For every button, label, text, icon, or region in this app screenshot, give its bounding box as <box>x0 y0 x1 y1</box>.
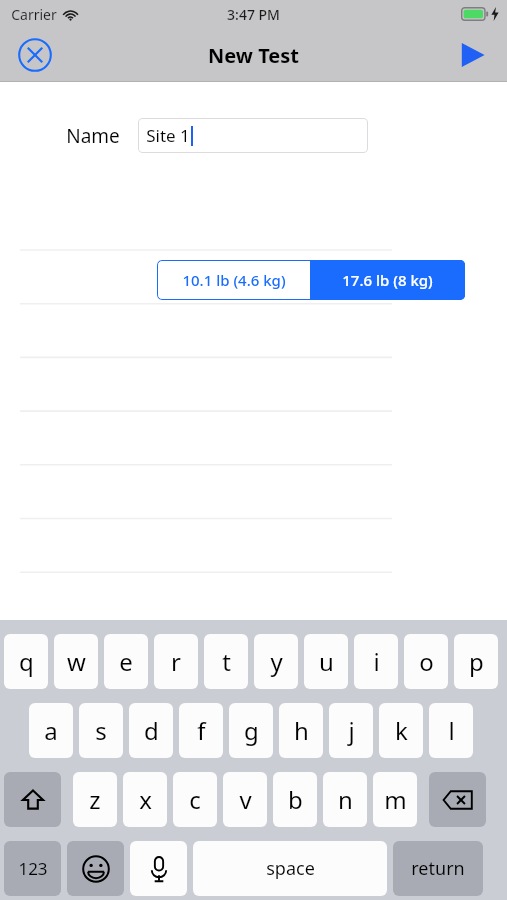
button[interactable]: b <box>273 772 317 827</box>
button[interactable]: Shift <box>4 772 61 827</box>
button[interactable]: 123 <box>4 841 61 896</box>
staticText: n <box>338 783 353 816</box>
button[interactable]: Site 1 <box>138 118 368 153</box>
button[interactable]: c <box>173 772 217 827</box>
button[interactable]: 10.1 lb (4.6 kg) <box>157 260 310 300</box>
button[interactable]: Start test <box>451 34 493 76</box>
button[interactable]: Emoji <box>67 841 124 896</box>
button[interactable]: i <box>354 634 398 689</box>
staticText: l <box>448 714 455 747</box>
button[interactable]: n <box>323 772 367 827</box>
staticText: p <box>469 645 484 678</box>
staticText: y <box>270 645 283 678</box>
button[interactable]: 17.6 lb (8 kg) <box>310 260 465 300</box>
staticText: 10.1 lb (4.6 kg) <box>182 270 286 290</box>
staticText: Name <box>66 123 120 149</box>
staticText: m <box>384 783 407 816</box>
staticText: f <box>197 714 206 747</box>
staticText: Carrier <box>11 5 57 24</box>
button[interactable]: x <box>123 772 167 827</box>
button[interactable]: s <box>79 703 123 758</box>
staticText: r <box>171 645 181 678</box>
staticText: 17.6 lb (8 kg) <box>342 270 433 290</box>
button[interactable]: l <box>429 703 473 758</box>
staticText: h <box>294 714 309 747</box>
staticText: w <box>67 645 86 678</box>
button[interactable]: j <box>329 703 373 758</box>
button[interactable]: r <box>154 634 198 689</box>
button[interactable]: v <box>223 772 267 827</box>
button[interactable]: t <box>204 634 248 689</box>
button[interactable]: a <box>29 703 73 758</box>
button[interactable]: z <box>73 772 117 827</box>
button[interactable]: e <box>104 634 148 689</box>
button[interactable]: g <box>229 703 273 758</box>
button[interactable]: u <box>304 634 348 689</box>
staticText: 123 <box>18 857 48 880</box>
staticText: j <box>348 714 355 747</box>
staticText: t <box>222 645 231 678</box>
staticText: g <box>244 714 259 747</box>
staticText: x <box>139 783 152 816</box>
button[interactable]: y <box>254 634 298 689</box>
staticText: New Test <box>208 42 299 69</box>
staticText: c <box>189 783 201 816</box>
staticText: o <box>419 645 434 678</box>
button[interactable]: m <box>373 772 417 827</box>
staticText: i <box>373 645 380 678</box>
button[interactable]: q <box>4 634 48 689</box>
staticText: z <box>89 783 101 816</box>
button[interactable]: w <box>54 634 98 689</box>
button[interactable]: Backspace <box>429 772 486 827</box>
button[interactable]: p <box>454 634 498 689</box>
staticText: e <box>119 645 133 678</box>
staticText: v <box>239 783 252 816</box>
button[interactable]: f <box>179 703 223 758</box>
button[interactable]: Dictation <box>130 841 187 896</box>
staticText: k <box>395 714 408 747</box>
button[interactable]: space <box>193 841 387 896</box>
button[interactable]: o <box>404 634 448 689</box>
staticText: Site 1 <box>146 124 190 147</box>
button[interactable]: h <box>279 703 323 758</box>
button[interactable]: d <box>129 703 173 758</box>
staticText: 3:47 PM <box>227 5 280 24</box>
staticText: space <box>266 856 315 881</box>
button[interactable]: return <box>393 841 483 896</box>
button[interactable]: k <box>379 703 423 758</box>
staticText: q <box>19 645 34 678</box>
staticText: return <box>411 856 465 881</box>
staticText: d <box>144 714 159 747</box>
staticText: s <box>95 714 107 747</box>
button[interactable]: Close <box>14 34 56 76</box>
staticText: a <box>44 714 58 747</box>
staticText: u <box>319 645 334 678</box>
staticText: b <box>288 783 303 816</box>
